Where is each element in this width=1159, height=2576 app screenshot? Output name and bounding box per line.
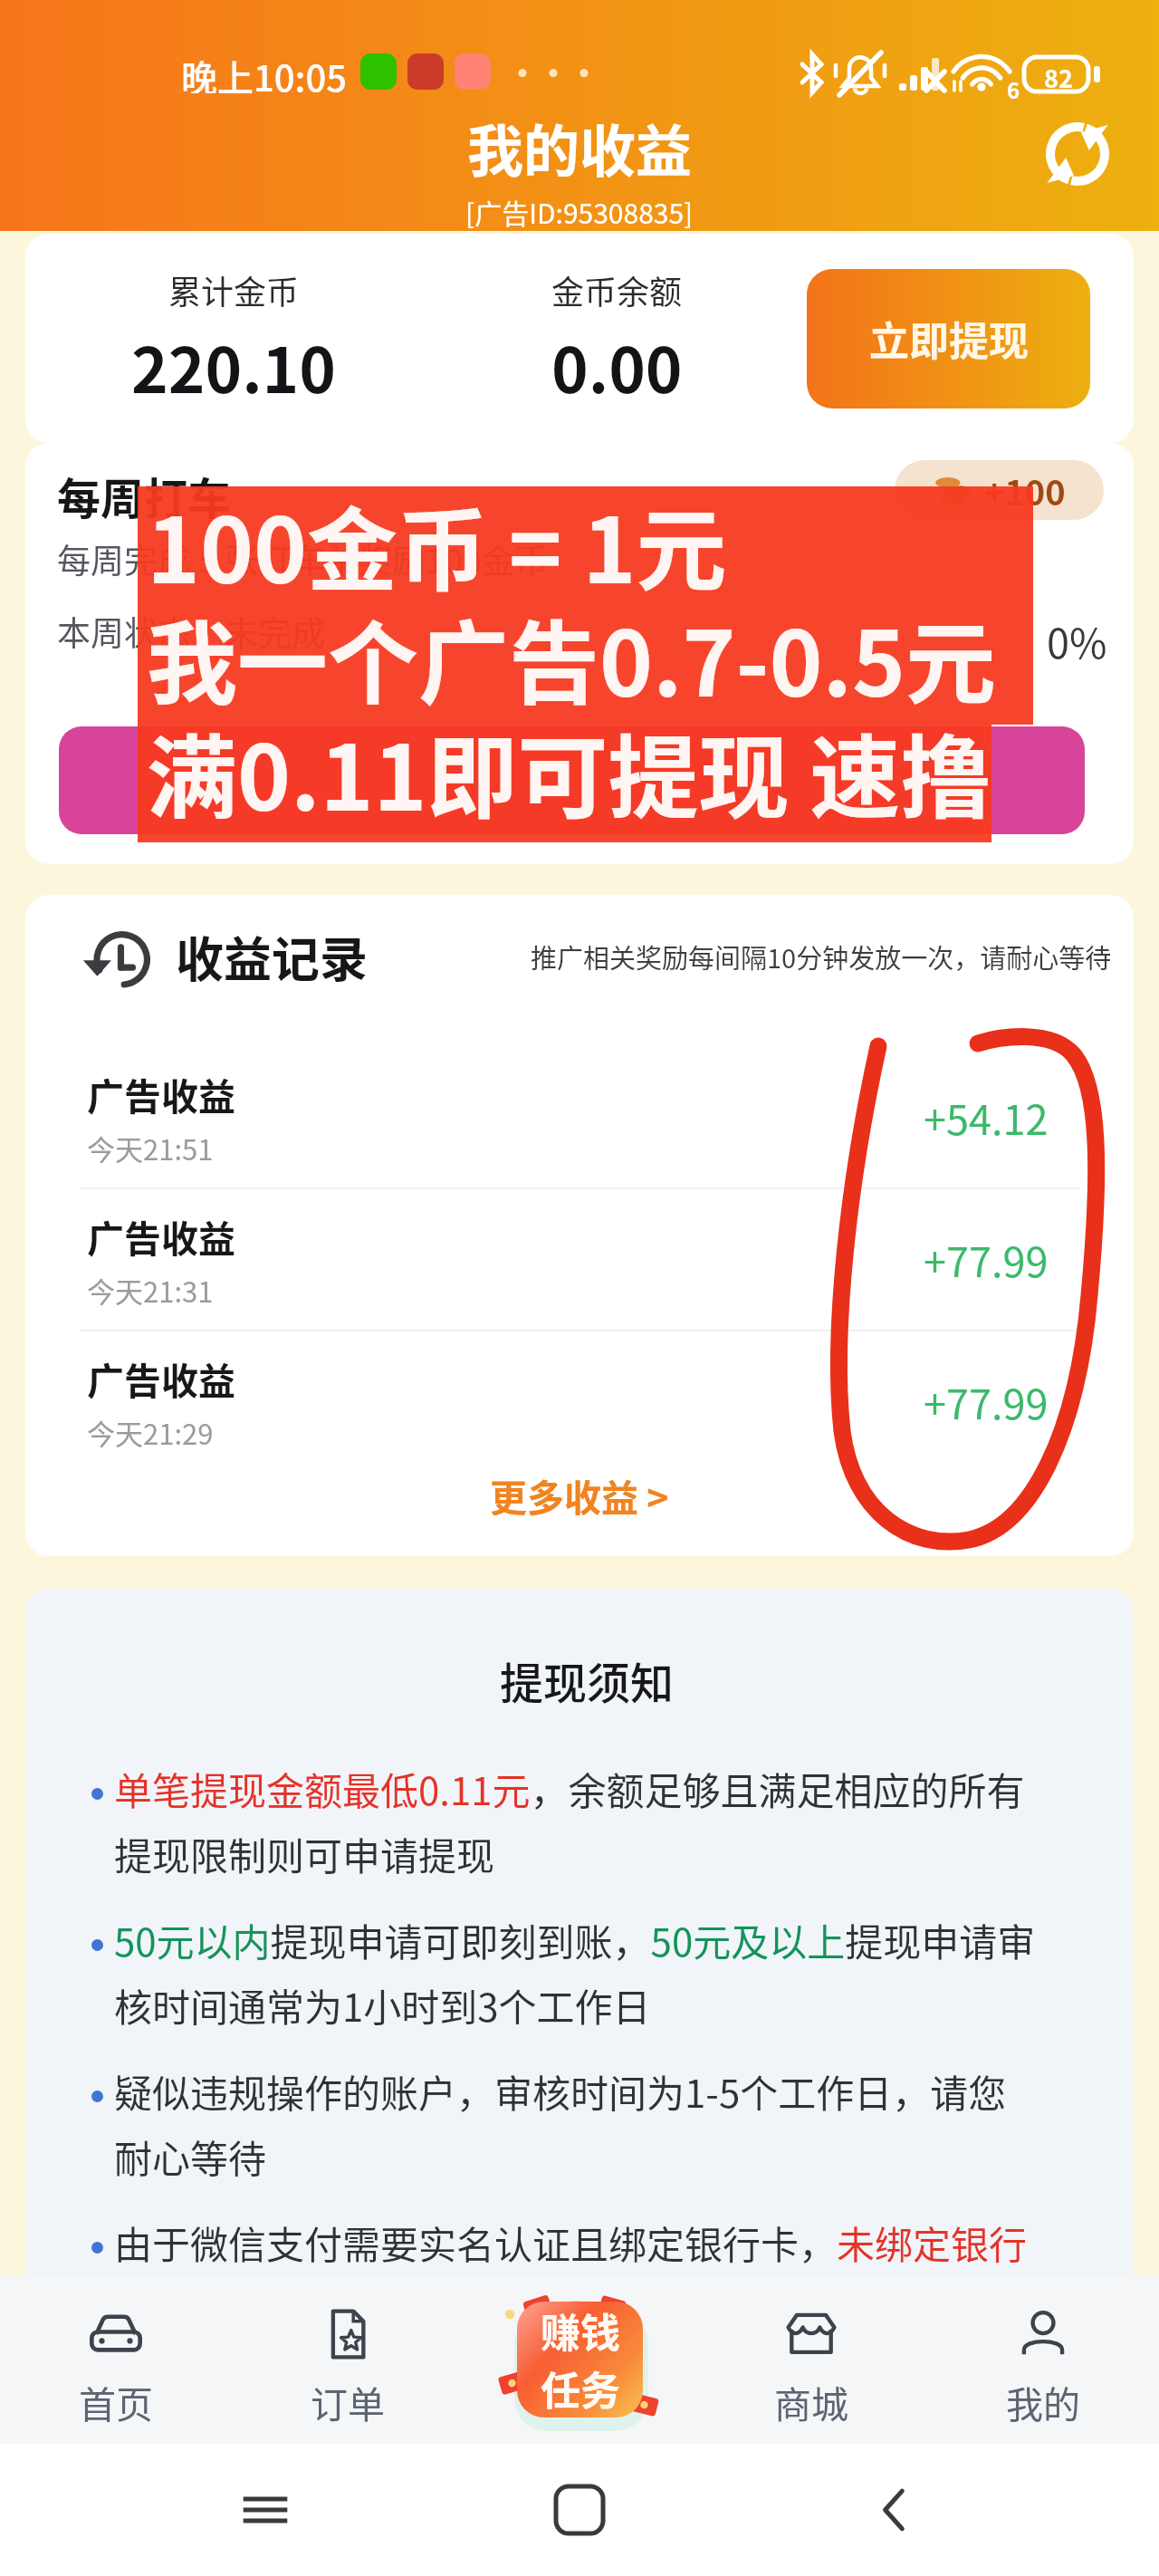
staticText: 疑似违规操作的账户，审核时间为1-5个工作日，请您耐心等待 <box>114 2063 1039 2184</box>
staticText: 广告收益 <box>87 1351 235 1405</box>
staticText: 每周打车 <box>57 464 232 527</box>
staticText: 本周状态：未完成 <box>57 607 325 656</box>
staticText: 立即提现 <box>869 310 1029 368</box>
staticText: 广告收益 <box>87 1067 235 1120</box>
staticText: 更多收益 > <box>490 1468 669 1522</box>
staticText: 任务 <box>541 2360 620 2417</box>
staticText: 今天21:31 <box>87 1270 214 1311</box>
button[interactable]: 我的 <box>927 2275 1159 2444</box>
staticText: 100金币 = 1元 <box>147 478 727 610</box>
staticText: +77.99 <box>924 1372 1049 1431</box>
button[interactable] <box>59 726 1085 834</box>
staticText: 今天21:29 <box>87 1412 214 1453</box>
staticText: 广告收益 <box>87 1209 235 1263</box>
staticText: 今天21:51 <box>87 1128 214 1168</box>
staticText: 6 <box>1007 73 1020 105</box>
staticText: 满0.11即可提现 速撸 <box>147 706 991 837</box>
button[interactable]: 主页 <box>530 2460 629 2560</box>
button[interactable]: 首页 <box>0 2275 232 2444</box>
staticText: 由于微信支付需要实名认证且绑定银行卡，未绑定银行卡无法提现 <box>114 2215 1039 2335</box>
staticText: 推广相关奖励每间隔10分钟发放一次，请耐心等待 <box>531 937 1112 976</box>
button[interactable]: 广告收益 <box>25 1189 1134 1330</box>
staticText: 收益记录 <box>176 922 368 992</box>
staticText: 提现须知 <box>500 1648 675 1712</box>
staticText: 220.10 <box>131 321 336 411</box>
button[interactable]: 最近任务 <box>216 2460 315 2560</box>
button[interactable]: 广告收益 <box>25 1331 1134 1472</box>
staticText: 我的收益 <box>467 107 693 188</box>
staticText: 累计金币 <box>168 266 300 313</box>
staticText: 我的 <box>1006 2375 1080 2428</box>
staticText: +77.99 <box>924 1230 1049 1289</box>
staticText: 商城 <box>774 2375 848 2428</box>
button[interactable]: 返回 <box>845 2460 944 2560</box>
staticText: 首页 <box>79 2375 153 2428</box>
button[interactable]: 刷新 <box>1030 107 1125 201</box>
staticText: 82 <box>1044 60 1073 95</box>
staticText: 金币余额 <box>551 266 683 313</box>
staticText: 赚钱 <box>541 2302 620 2360</box>
staticText: 单笔提现金额最低0.11元，余额足够且满足相应的所有提现限制则可申请提现 <box>114 1761 1039 1881</box>
staticText: +54.12 <box>924 1088 1049 1147</box>
button[interactable]: 订单 <box>232 2275 464 2444</box>
staticText: 0.00 <box>551 321 683 411</box>
staticText: 我一个广告0.7-0.5元 <box>147 591 996 723</box>
staticText: 0% <box>1047 611 1107 670</box>
staticText: [广告ID:95308835] <box>465 192 694 231</box>
button[interactable]: 更多收益 > <box>475 1463 684 1527</box>
staticText: 每周完成 5 张打车单奖励100金币 <box>57 534 549 583</box>
button[interactable]: 商城 <box>695 2275 927 2444</box>
staticText: 晚上10:05 <box>181 50 348 93</box>
staticText: 50元以内提现申请可即刻到账，50元及以上提现申请审核时间通常为1小时到3个工作… <box>114 1912 1039 2033</box>
staticText: +100 <box>984 466 1066 515</box>
staticText: 订单 <box>311 2375 385 2428</box>
button[interactable]: 赚钱任务 <box>489 2275 670 2444</box>
staticText: ••• <box>507 50 599 93</box>
button[interactable]: 广告收益 <box>25 1047 1134 1187</box>
button[interactable]: 立即提现 <box>807 269 1090 409</box>
